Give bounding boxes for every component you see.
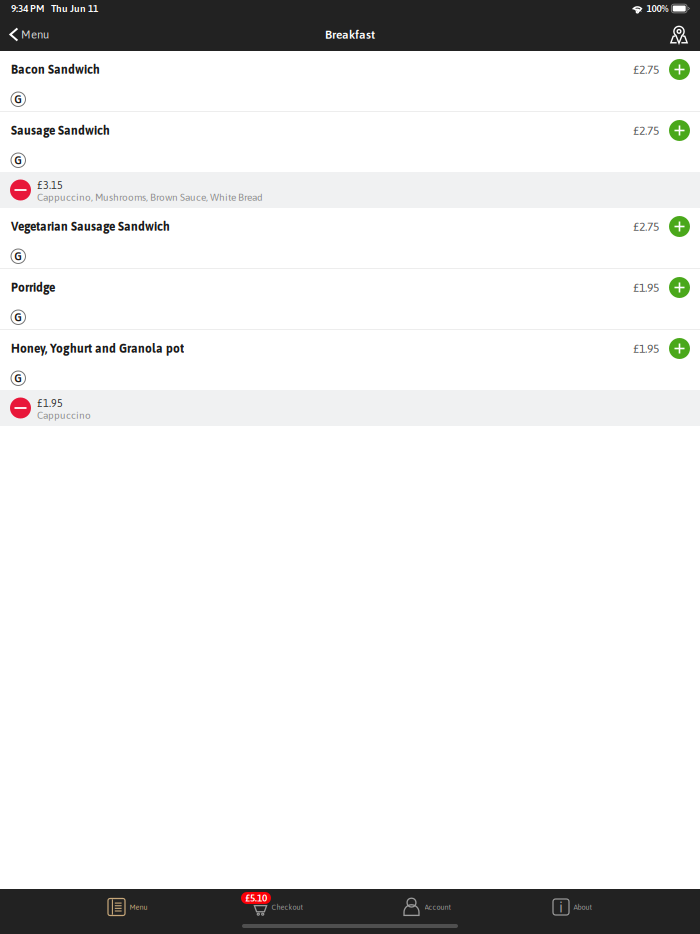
staticText: Thu Jun 11 bbox=[51, 3, 98, 14]
staticText: £2.75 bbox=[633, 220, 659, 233]
staticText: Checkout bbox=[271, 903, 303, 911]
staticText: £2.75 bbox=[633, 63, 659, 76]
button[interactable]: Add Porridge bbox=[664, 272, 695, 303]
staticText: About bbox=[573, 903, 592, 911]
button[interactable]: i bbox=[553, 889, 700, 934]
staticText: £3.15 bbox=[37, 179, 63, 191]
staticText: 9:34 PM bbox=[11, 3, 44, 14]
staticText: Sausage Sandwich bbox=[11, 124, 110, 137]
button[interactable]: Add Vegetarian Sausage Sandwich bbox=[664, 211, 695, 242]
staticText: Menu bbox=[129, 903, 147, 911]
staticText: i bbox=[559, 898, 563, 915]
staticText: G bbox=[14, 250, 22, 263]
button[interactable]: Checkout bbox=[254, 889, 403, 934]
button[interactable]: Menu bbox=[0, 19, 49, 49]
button[interactable]: Remove Cappuccino, Mushrooms, Brown Sauc… bbox=[10, 179, 31, 200]
button[interactable]: Menu bbox=[108, 889, 254, 934]
staticText: Menu bbox=[21, 28, 49, 41]
staticText: G bbox=[14, 154, 22, 167]
staticText: £1.95 bbox=[37, 397, 63, 409]
button[interactable]: Locations bbox=[658, 19, 700, 49]
staticText: 100% bbox=[646, 3, 668, 14]
staticText: Honey, Yoghurt and Granola pot bbox=[11, 342, 184, 355]
staticText: G bbox=[14, 311, 22, 324]
staticText: Bacon Sandwich bbox=[11, 63, 100, 76]
button[interactable]: Remove Cappuccino bbox=[10, 397, 31, 418]
staticText: £1.95 bbox=[633, 281, 659, 294]
button[interactable]: Account bbox=[403, 889, 553, 934]
staticText: £5.10 bbox=[245, 892, 267, 904]
staticText: Breakfast bbox=[325, 28, 375, 41]
staticText: Cappuccino, Mushrooms, Brown Sauce, Whit… bbox=[37, 191, 263, 203]
staticText: Vegetarian Sausage Sandwich bbox=[11, 220, 170, 233]
button[interactable]: Add Sausage Sandwich bbox=[664, 115, 695, 146]
staticText: Account bbox=[424, 903, 451, 911]
staticText: £2.75 bbox=[633, 124, 659, 137]
staticText: Cappuccino bbox=[37, 409, 91, 421]
button[interactable]: Add Bacon Sandwich bbox=[664, 54, 695, 85]
button[interactable]: Add Honey, Yoghurt and Granola pot bbox=[664, 333, 695, 364]
staticText: £1.95 bbox=[633, 342, 659, 355]
staticText: G bbox=[14, 372, 22, 385]
staticText: G bbox=[14, 93, 22, 106]
staticText: Porridge bbox=[11, 281, 55, 294]
